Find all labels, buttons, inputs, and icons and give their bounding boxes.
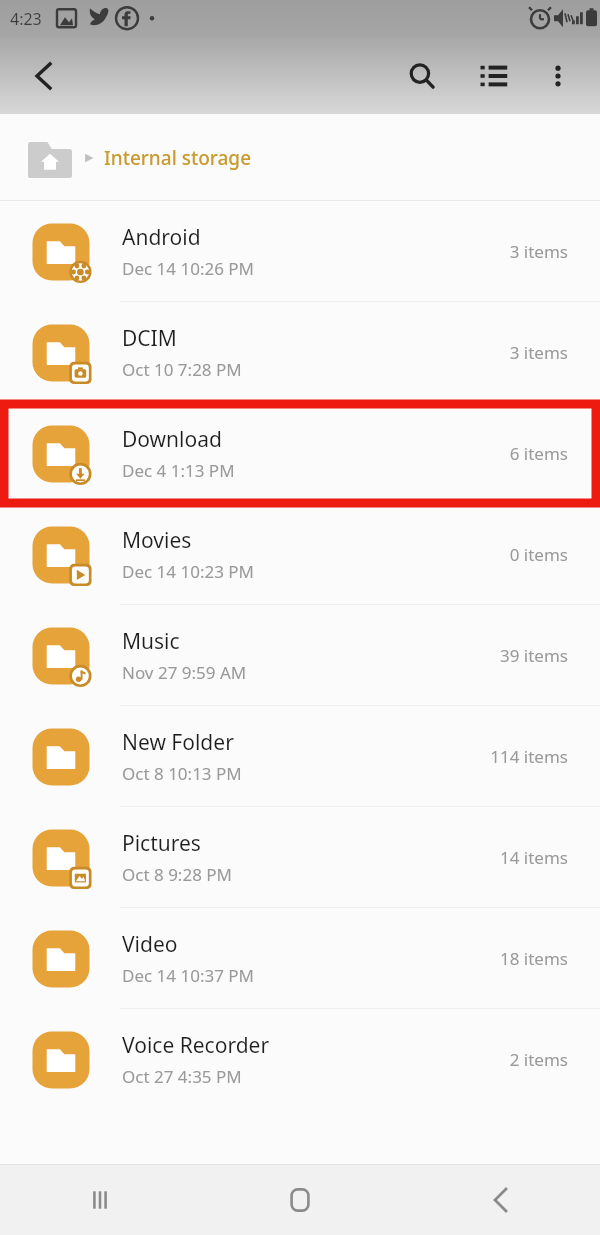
button[interactable]: Internal storage: [28, 138, 252, 178]
staticText: 114 items: [490, 745, 568, 768]
staticText: 14 items: [499, 846, 568, 869]
staticText: New Folder: [122, 728, 234, 757]
staticText: Oct 8 9:28 PM: [122, 863, 232, 886]
staticText: 3 items: [509, 341, 568, 364]
staticText: 0 items: [509, 543, 568, 566]
button[interactable]: Home: [200, 1164, 400, 1235]
button[interactable]: More options: [532, 50, 584, 102]
button[interactable]: Back: [400, 1164, 600, 1235]
button[interactable]: Recent apps: [0, 1164, 200, 1235]
button[interactable]: Back: [14, 47, 72, 105]
staticText: 4:23: [10, 8, 42, 30]
button[interactable]: DCIM: [0, 302, 600, 403]
button[interactable]: View as list: [466, 48, 522, 104]
staticText: 2 items: [509, 1048, 568, 1071]
staticText: Dec 4 1:13 PM: [122, 459, 235, 482]
staticText: Oct 27 4:35 PM: [122, 1065, 242, 1088]
staticText: Dec 14 10:26 PM: [122, 257, 255, 280]
staticText: 39 items: [499, 644, 568, 667]
staticText: 18 items: [499, 947, 568, 970]
button[interactable]: Movies: [0, 504, 600, 605]
staticText: Oct 10 7:28 PM: [122, 358, 242, 381]
staticText: Android: [122, 223, 201, 252]
staticText: Oct 8 10:13 PM: [122, 762, 242, 785]
staticText: Nov 27 9:59 AM: [122, 661, 247, 684]
button[interactable]: Music: [0, 605, 600, 706]
button[interactable]: New Folder: [0, 706, 600, 807]
button[interactable]: Android: [0, 201, 600, 302]
staticText: Movies: [122, 526, 192, 555]
staticText: Internal storage: [104, 145, 252, 171]
button[interactable]: Video: [0, 908, 600, 1009]
button[interactable]: Pictures: [0, 807, 600, 908]
staticText: Dec 14 10:37 PM: [122, 964, 255, 987]
button[interactable]: Voice Recorder: [0, 1009, 600, 1110]
staticText: DCIM: [122, 324, 177, 353]
staticText: Music: [122, 627, 180, 656]
staticText: Video: [122, 930, 178, 959]
staticText: Dec 14 10:23 PM: [122, 560, 255, 583]
staticText: 3 items: [509, 240, 568, 263]
staticText: Download: [122, 425, 222, 454]
staticText: Voice Recorder: [122, 1031, 270, 1060]
staticText: Pictures: [122, 829, 201, 858]
button[interactable]: Search: [394, 48, 450, 104]
button[interactable]: Download: [0, 403, 600, 504]
staticText: 6 items: [509, 442, 568, 465]
